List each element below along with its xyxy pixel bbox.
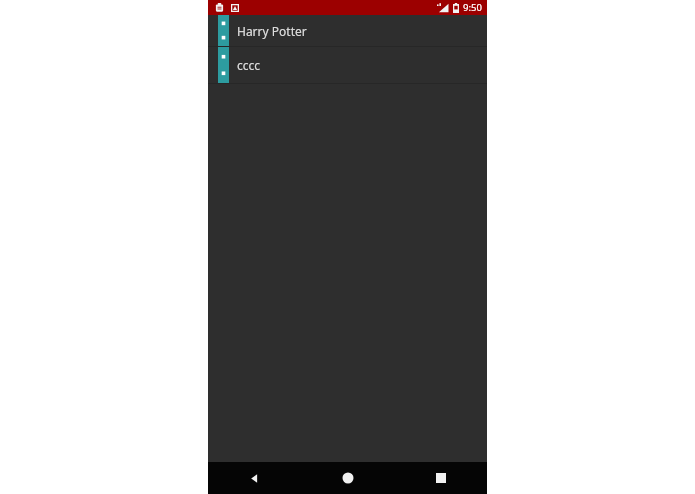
button[interactable]: Home (301, 462, 394, 494)
button[interactable]: Recent apps (394, 462, 487, 494)
button[interactable]: Back (208, 462, 301, 494)
staticText: cccc (237, 57, 261, 73)
button[interactable]: Harry Potter (208, 15, 487, 46)
staticText: 9:50 (463, 1, 482, 14)
button[interactable]: cccc (208, 47, 487, 83)
staticText: Harry Potter (237, 23, 307, 39)
